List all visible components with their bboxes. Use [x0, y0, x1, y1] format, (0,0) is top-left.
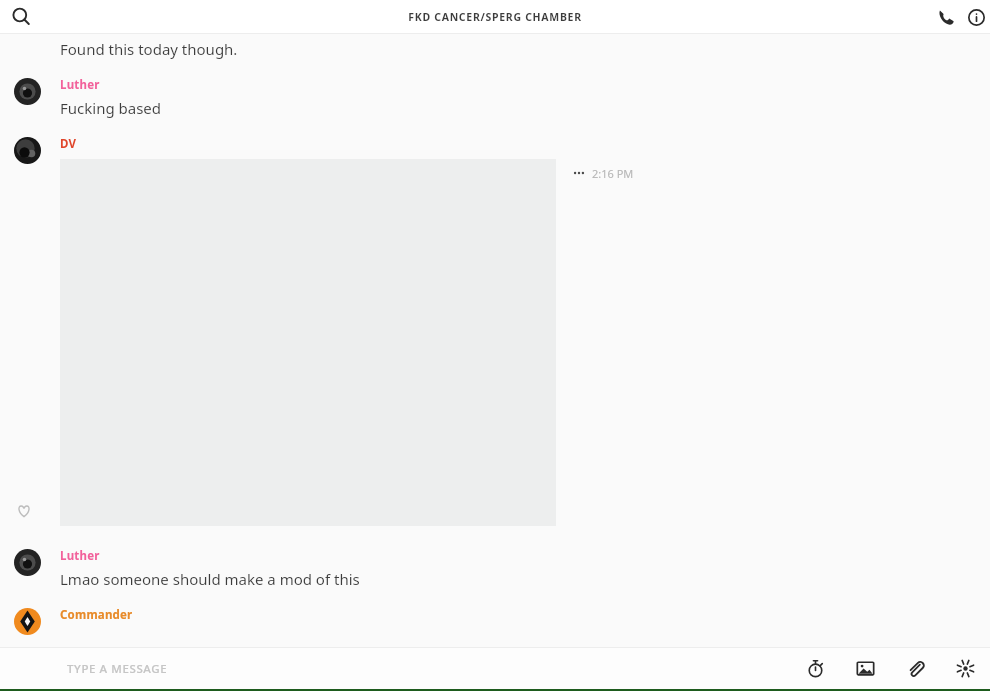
- staticText: TYPE A MESSAGE: [67, 661, 168, 677]
- staticText: Lmao someone should make a mod of this: [60, 569, 360, 589]
- button[interactable]: Attach file: [890, 648, 940, 689]
- button[interactable]: Luther profile picture: [0, 77, 990, 118]
- staticText: Fucking based: [60, 98, 162, 118]
- button[interactable]: Luther profile picture: [14, 78, 41, 105]
- button[interactable]: DV profile picture: [14, 137, 41, 164]
- button[interactable]: TYPE A MESSAGE: [0, 648, 790, 689]
- staticText: DV: [60, 136, 77, 152]
- staticText: Commander: [60, 607, 133, 623]
- button[interactable]: Effects: [940, 648, 990, 689]
- button[interactable]: Found this today though.: [0, 39, 990, 59]
- button[interactable]: Commander profile picture: [0, 607, 990, 635]
- staticText: Luther: [60, 77, 100, 93]
- button[interactable]: Luther profile picture: [0, 548, 990, 589]
- button[interactable]: Luther profile picture: [14, 549, 41, 576]
- staticText: FKD CANCER/SPERG CHAMBER: [408, 10, 582, 24]
- staticText: Luther: [60, 548, 100, 564]
- staticText: 2:16 PM: [592, 166, 634, 181]
- button[interactable]: Commander profile picture: [14, 608, 41, 635]
- button[interactable]: Message options: [569, 163, 589, 183]
- button[interactable]: Call: [930, 1, 962, 33]
- staticText: Found this today though.: [60, 39, 238, 59]
- button[interactable]: Search: [5, 1, 37, 33]
- button[interactable]: Send image: [840, 648, 890, 689]
- button[interactable]: React with heart: [15, 502, 33, 520]
- button[interactable]: Disappearing message timer: [790, 648, 840, 689]
- button[interactable]: Conversation info: [962, 3, 990, 31]
